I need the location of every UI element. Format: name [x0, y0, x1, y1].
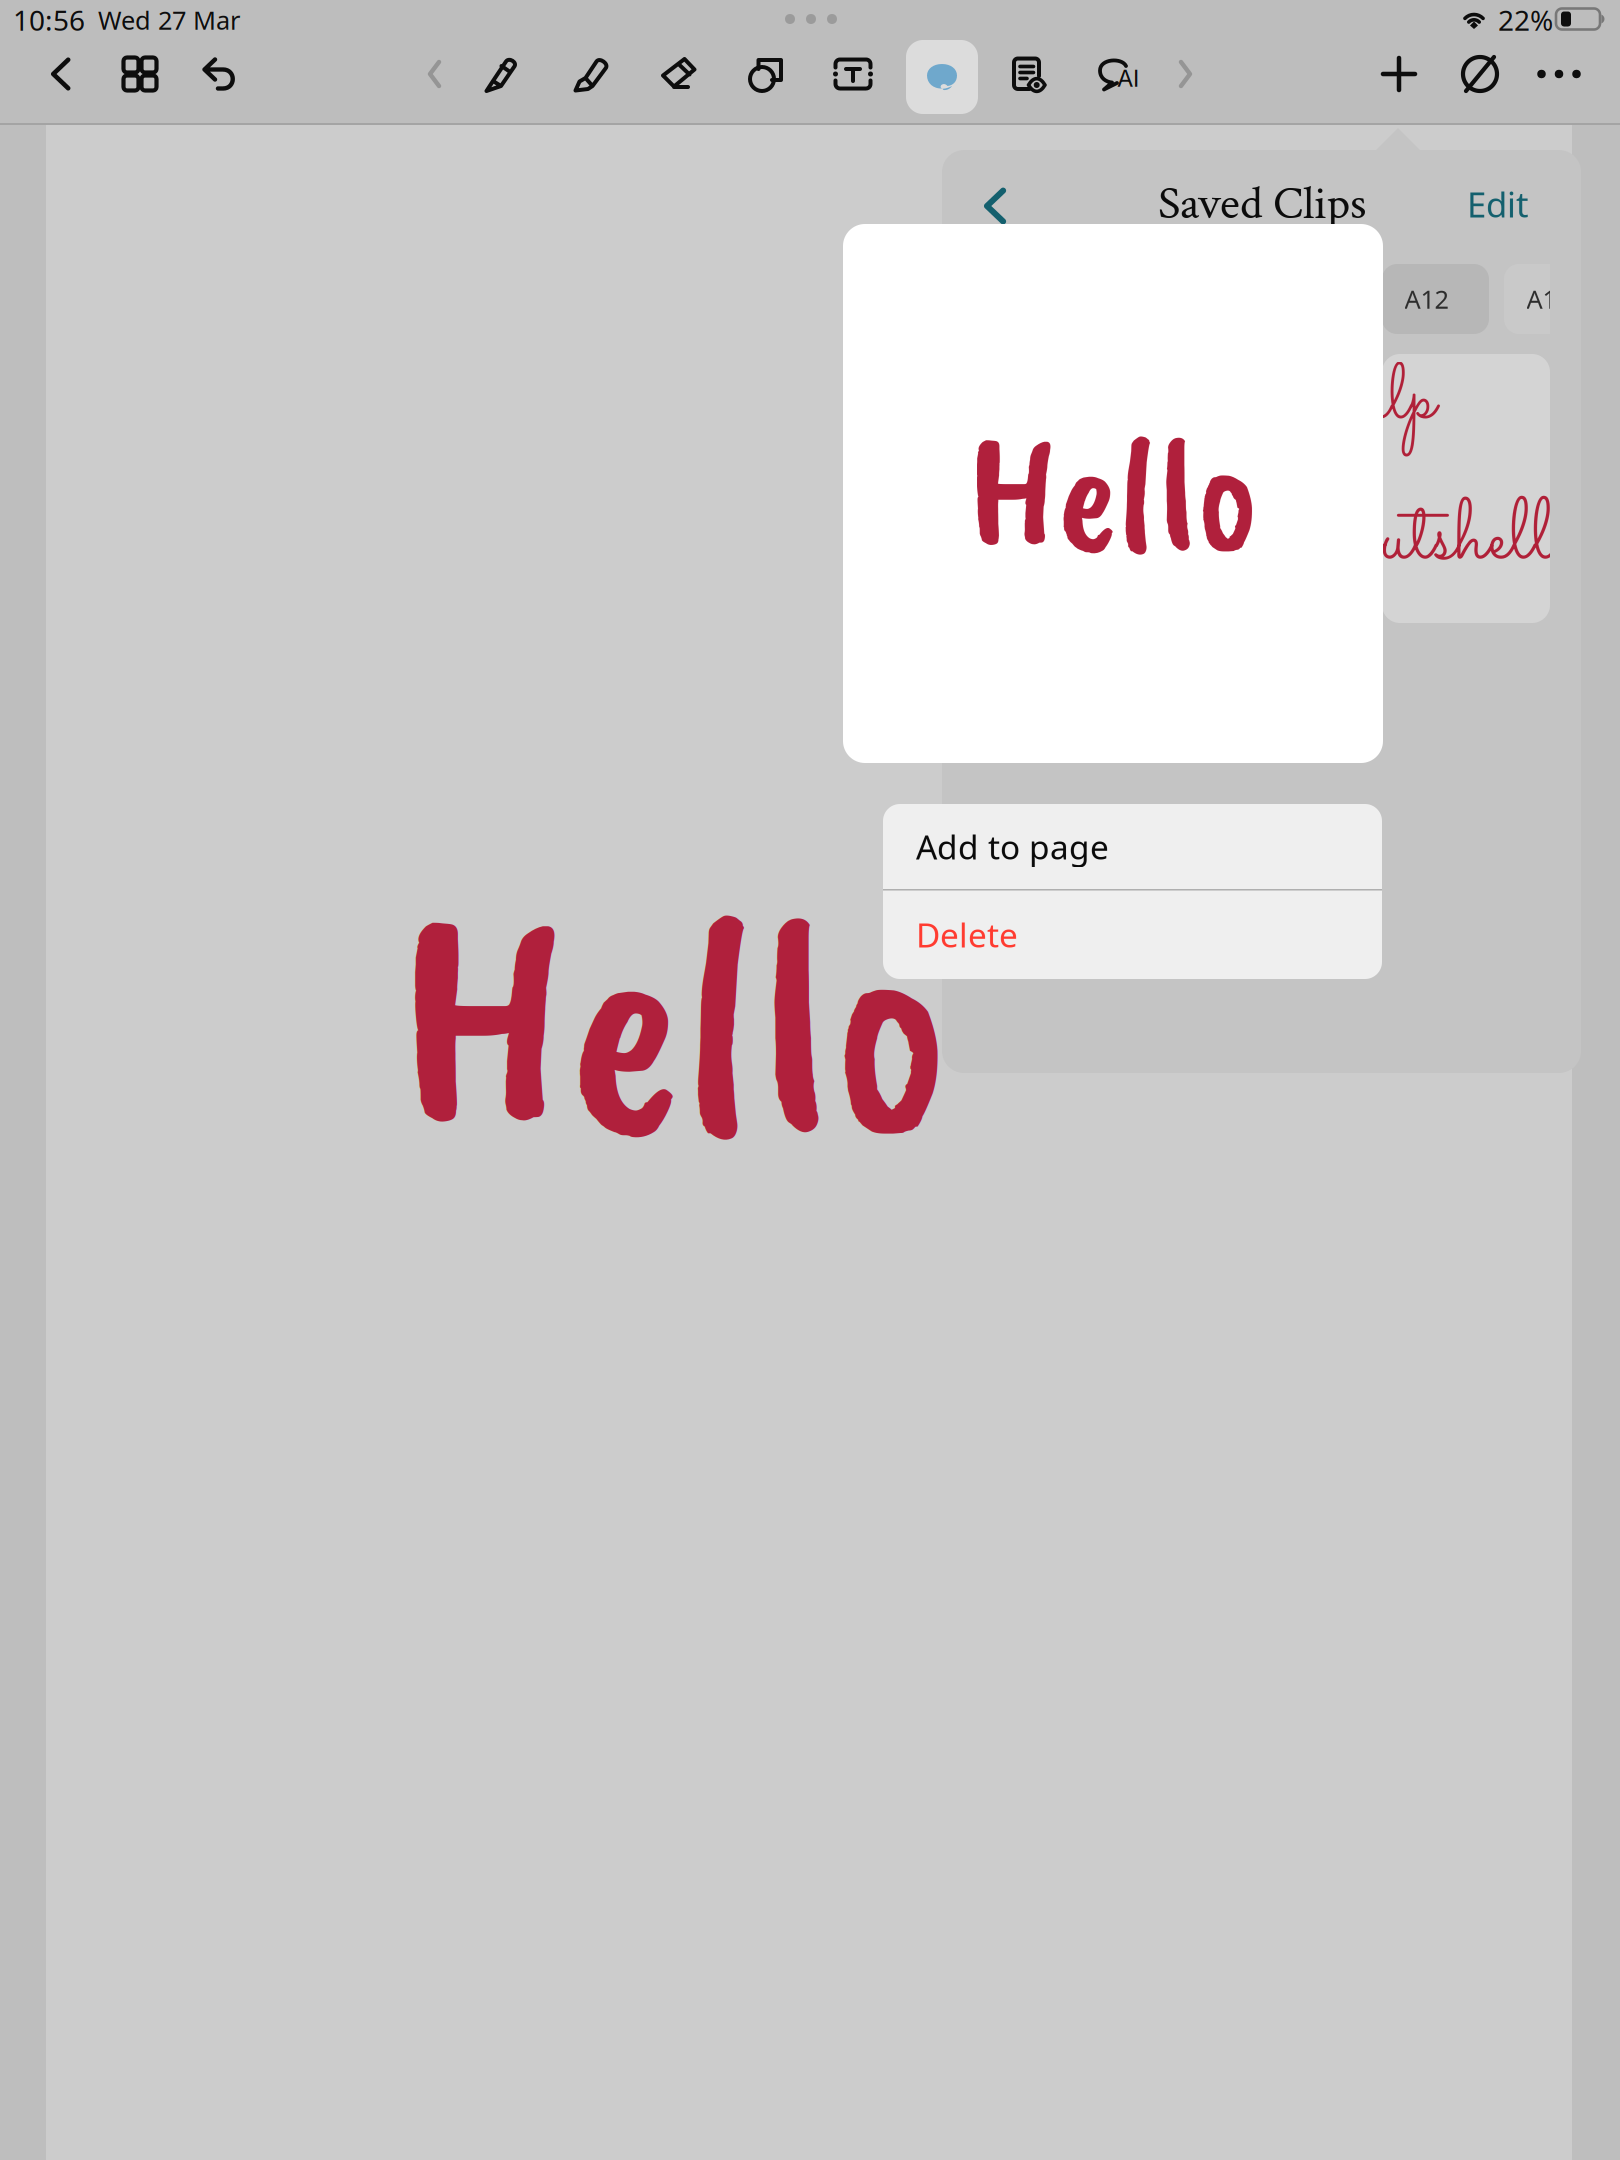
button[interactable]: Back — [983, 187, 1005, 225]
staticText: 10:56 — [13, 1, 85, 39]
staticText: 22% — [1498, 1, 1553, 39]
button[interactable]: Shapes — [731, 38, 803, 110]
staticText: Add to page — [916, 824, 1109, 869]
button[interactable]: No fill — [1444, 38, 1516, 110]
button[interactable]: AI assistant — [1083, 38, 1155, 110]
button[interactable]: Back — [24, 38, 96, 110]
staticText: A13 — [1526, 282, 1570, 316]
staticText: help — [1340, 346, 1435, 458]
button[interactable]: Edit — [1443, 176, 1553, 232]
staticText: Hello — [397, 832, 950, 1216]
button[interactable]: More options — [1523, 38, 1595, 110]
button[interactable]: A13 — [1504, 264, 1611, 334]
button[interactable]: Highlighter — [555, 38, 627, 110]
button[interactable]: Text box — [817, 38, 889, 110]
button[interactable]: Add to page — [883, 804, 1382, 889]
staticText: Wed 27 Mar — [98, 3, 240, 37]
button[interactable]: More tools — [1149, 38, 1221, 110]
staticText: Hello — [967, 392, 1258, 595]
button[interactable]: Page outline — [994, 38, 1066, 110]
button[interactable]: Page thumbnails — [104, 38, 176, 110]
button[interactable]: Lasso — [906, 40, 978, 114]
button[interactable]: Add — [1363, 38, 1435, 110]
button[interactable]: Previous tools — [399, 38, 471, 110]
staticText: AI — [1117, 63, 1139, 92]
button[interactable]: Undo — [184, 38, 256, 110]
staticText: Saved Clips — [1158, 174, 1366, 234]
button[interactable]: Eraser — [642, 38, 714, 110]
button[interactable]: A12 — [1382, 264, 1489, 334]
staticText: A12 — [1404, 282, 1448, 316]
button[interactable]: Pen — [465, 38, 537, 110]
staticText: Edit — [1467, 181, 1529, 227]
staticText: Delete — [916, 912, 1018, 957]
staticText: in a nutshell — [1217, 476, 1554, 604]
button[interactable]: Delete — [883, 890, 1382, 979]
